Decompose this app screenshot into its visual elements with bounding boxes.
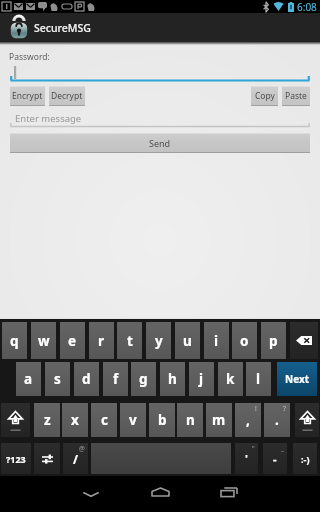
button[interactable]: :-) [293,443,317,474]
button[interactable]: t [117,322,142,359]
button[interactable]: d [74,362,99,396]
staticText: Enter message [15,112,82,125]
staticText: ! [255,404,257,413]
staticText: q [10,332,19,350]
button[interactable]: Hide keyboard [64,478,118,510]
button[interactable]: k [218,362,243,396]
staticText: Password: [9,51,50,63]
staticText: , [246,411,250,429]
staticText: p [269,332,278,350]
button[interactable]: n [177,403,203,437]
staticText: i [214,332,219,350]
button[interactable]: f [103,362,128,396]
staticText: v [129,411,137,429]
staticText: 6:08 [297,0,317,13]
staticText: Encrypt [12,90,43,102]
button[interactable]: o [232,322,257,359]
button[interactable]: . [264,403,290,437]
button[interactable]: x [62,403,88,437]
button[interactable]: Shift [1,403,30,437]
staticText: l [256,370,261,388]
button[interactable]: Shift [295,403,319,437]
staticText: x [71,411,79,429]
staticText: s [54,370,61,388]
button[interactable]: c [91,403,117,437]
button[interactable]: Backspace [290,322,318,359]
button[interactable]: j [189,362,214,396]
staticText: Next [285,372,310,386]
button[interactable]: Send [10,133,310,153]
staticText: Paste [285,90,307,102]
button[interactable]: Copy [251,86,278,106]
staticText: Send [149,137,171,149]
staticText: :-) [301,453,310,465]
button[interactable]: Encrypt [10,86,45,106]
staticText: t [127,332,133,350]
button[interactable]: u [175,322,200,359]
button[interactable]: Change language [34,443,60,474]
staticText: r [98,332,105,350]
button[interactable]: q [2,322,27,359]
button[interactable]: a [16,362,41,396]
button[interactable]: Paste [282,86,310,106]
staticText: a [24,370,33,388]
button[interactable]: p [261,322,286,359]
staticText: . [275,411,279,429]
button[interactable]: h [160,362,185,396]
staticText: _ [281,444,284,453]
staticText: m [212,411,226,429]
button[interactable]: i [204,322,229,359]
button[interactable]: b [149,403,175,437]
button[interactable]: Space [91,443,231,474]
button[interactable]: s [45,362,70,396]
button[interactable]: y [146,322,171,359]
staticText: - [273,451,277,466]
button[interactable]: ?123 [1,443,31,474]
staticText: ? [283,404,286,413]
button[interactable]: Next [277,362,317,396]
staticText: j [199,370,204,388]
button[interactable]: Home [133,476,187,508]
staticText: SecureMSG [34,21,91,35]
button[interactable]: g [131,362,156,396]
staticText: ?123 [6,453,26,465]
staticText: b [158,411,167,429]
staticText: ' [245,451,248,466]
staticText: w [38,332,50,350]
staticText: u [183,332,192,350]
button[interactable]: Recent apps [202,476,256,508]
staticText: d [82,370,91,388]
staticText: k [226,370,235,388]
staticText: h [168,370,177,388]
staticText: / [73,451,78,467]
button[interactable]: v [120,403,146,437]
staticText: o [240,332,249,350]
staticText: Copy [255,90,275,102]
button[interactable]: m [206,403,232,437]
staticText: z [44,411,51,429]
staticText: Decrypt [51,90,83,102]
button[interactable]: / [63,443,88,474]
staticText: f [113,370,119,388]
button[interactable]: ' [235,443,258,474]
button[interactable]: z [34,403,60,437]
staticText: @ [79,444,85,453]
button[interactable]: , [235,403,261,437]
staticText: e [68,332,77,350]
staticText: c [101,411,108,429]
button[interactable]: e [60,322,85,359]
button[interactable]: Decrypt [49,86,85,106]
button[interactable]: l [246,362,271,396]
staticText: y [155,332,163,350]
staticText: n [186,411,195,429]
button[interactable]: - [263,443,287,474]
staticText: g [139,370,148,388]
staticText: " [252,444,255,453]
button[interactable]: w [31,322,56,359]
button[interactable]: r [89,322,114,359]
